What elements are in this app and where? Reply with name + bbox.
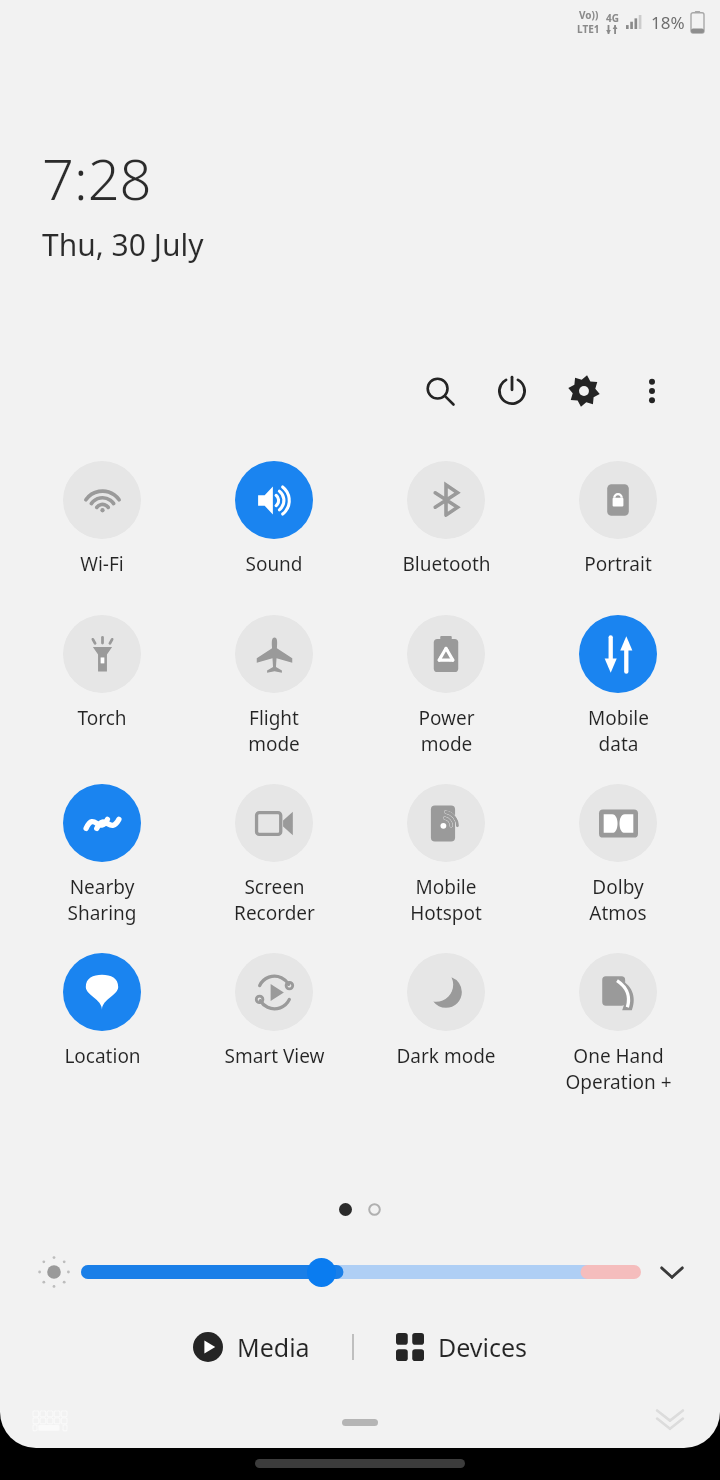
button[interactable]: Dark mode	[366, 953, 526, 1069]
staticText: Media	[237, 1330, 310, 1364]
button[interactable]: Settings	[556, 363, 612, 419]
button[interactable]: Collapse panel	[646, 1398, 694, 1446]
button[interactable]: Wi-Fi	[22, 461, 182, 577]
staticText: 7:28	[42, 140, 152, 216]
button[interactable]: Torch	[22, 615, 182, 731]
staticText: Smart View	[224, 1043, 325, 1069]
button[interactable]	[88, 1252, 634, 1292]
button[interactable]: Portrait	[538, 461, 698, 577]
button[interactable]: Mobile Hotspot	[366, 784, 526, 925]
button[interactable]: One Hand Operation +	[538, 953, 698, 1094]
button[interactable]: Flight mode	[194, 615, 354, 756]
button[interactable]: Bluetooth	[366, 461, 526, 577]
button[interactable]: Sound	[194, 461, 354, 577]
button[interactable]: More options	[624, 363, 680, 419]
staticText: Nearby Sharing	[67, 874, 137, 925]
button[interactable]: Search	[412, 363, 468, 419]
staticText: Location	[64, 1043, 141, 1069]
staticText: Wi-Fi	[80, 551, 124, 577]
staticText: Devices	[438, 1330, 528, 1364]
button[interactable]: Screen Recorder	[194, 784, 354, 925]
staticText: Mobile Hotspot	[410, 874, 482, 925]
staticText: Torch	[77, 705, 127, 731]
staticText: Mobile data	[588, 705, 649, 756]
button[interactable]: Nearby Sharing	[22, 784, 182, 925]
button[interactable]: Expand brightness settings	[650, 1250, 694, 1294]
staticText: Thu, 30 July	[42, 224, 204, 265]
button[interactable]: Media	[183, 1324, 320, 1370]
button[interactable]: Location	[22, 953, 182, 1069]
button[interactable]: Power off	[484, 363, 540, 419]
staticText: Vo))	[579, 8, 599, 22]
staticText: 4G	[606, 11, 619, 25]
button[interactable]: Dolby Atmos	[538, 784, 698, 925]
staticText: Sound	[245, 551, 303, 577]
staticText: Power mode	[418, 705, 475, 756]
button[interactable]: Power mode	[366, 615, 526, 756]
button[interactable]: Devices	[386, 1324, 538, 1370]
staticText: Dark mode	[396, 1043, 496, 1069]
staticText: Dolby Atmos	[589, 874, 647, 925]
staticText: Portrait	[584, 551, 652, 577]
staticText: Flight mode	[248, 705, 300, 756]
button[interactable]: Mobile data	[538, 615, 698, 756]
button[interactable]: Smart View	[194, 953, 354, 1069]
staticText: Bluetooth	[402, 551, 491, 577]
staticText: 18%	[651, 11, 685, 34]
staticText: Screen Recorder	[234, 874, 315, 925]
staticText: One Hand Operation +	[565, 1043, 672, 1094]
staticText: LTE1	[577, 22, 600, 36]
